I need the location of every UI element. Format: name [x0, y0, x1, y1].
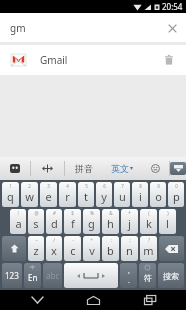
- staticText: @: [34, 210, 39, 216]
- button[interactable]: Move cursor: [31, 157, 64, 180]
- staticText: e: [45, 189, 52, 204]
- button[interactable]: (: [140, 209, 157, 234]
- button[interactable]: 英文: [103, 157, 141, 180]
- button[interactable]: Recent apps: [130, 290, 170, 310]
- button[interactable]: +: [83, 236, 100, 261]
- staticText: .: [128, 276, 130, 286]
- button[interactable]: &: [102, 209, 119, 234]
- staticText: u: [119, 189, 126, 204]
- staticText: ,: [128, 266, 130, 276]
- staticText: /: [53, 237, 55, 243]
- staticText: ;: [129, 237, 131, 243]
- button[interactable]: %: [83, 209, 100, 234]
- staticText: 2: [28, 183, 31, 189]
- staticText: 符: [144, 273, 152, 283]
- button[interactable]: ~: [28, 236, 44, 261]
- staticText: $: [71, 210, 74, 216]
- button[interactable]: ;: [121, 236, 138, 261]
- button[interactable]: :: [102, 236, 119, 261]
- staticText: 8: [139, 183, 142, 189]
- staticText: *: [128, 210, 131, 216]
- staticText: g: [88, 216, 95, 231]
- staticText: !: [17, 210, 19, 216]
- staticText: q: [7, 189, 14, 204]
- staticText: x: [51, 243, 57, 258]
- button[interactable]: Hide keyboard: [17, 290, 57, 310]
- staticText: +: [90, 237, 93, 243]
- button[interactable]: @: [28, 209, 44, 234]
- staticText: 123: [5, 270, 19, 281]
- button[interactable]: 符: [139, 263, 156, 288]
- button[interactable]: abc: [43, 263, 62, 288]
- button[interactable]: Emoji: [141, 157, 169, 180]
- button[interactable]: Backspace: [159, 236, 184, 261]
- button[interactable]: ?: [140, 236, 157, 261]
- button[interactable]: 拼音: [65, 157, 103, 180]
- button[interactable]: Hide keyboard: [170, 157, 186, 180]
- button[interactable]: 2: [21, 182, 38, 207]
- staticText: 英文: [111, 163, 129, 174]
- staticText: r: [65, 189, 70, 204]
- button[interactable]: Shift: [2, 236, 26, 261]
- button[interactable]: Gmail: [0, 45, 186, 75]
- staticText: 1: [9, 183, 12, 189]
- staticText: ): [167, 210, 169, 216]
- button[interactable]: Input method settings: [0, 157, 30, 180]
- staticText: %: [90, 210, 94, 216]
- button[interactable]: 1: [2, 182, 19, 207]
- button[interactable]: $: [64, 209, 81, 234]
- staticText: k: [146, 216, 152, 231]
- staticText: p: [173, 189, 180, 204]
- button[interactable]: #: [46, 209, 62, 234]
- button[interactable]: /: [46, 236, 62, 261]
- staticText: 搜索: [163, 271, 179, 281]
- staticText: 3: [47, 183, 50, 189]
- button[interactable]: Punctuation: [120, 263, 137, 288]
- staticText: 5: [85, 183, 88, 189]
- staticText: l: [166, 216, 169, 231]
- button[interactable]: 7: [114, 182, 130, 207]
- staticText: t: [84, 189, 88, 204]
- staticText: 中: [30, 264, 35, 270]
- button[interactable]: -: [64, 236, 81, 261]
- staticText: 拼音: [75, 163, 93, 174]
- staticText: 20:54: [162, 1, 183, 12]
- staticText: d: [51, 216, 58, 231]
- staticText: m: [143, 243, 154, 258]
- button[interactable]: Space: [64, 263, 118, 288]
- staticText: En: [28, 272, 38, 283]
- button[interactable]: !: [10, 209, 26, 234]
- staticText: :: [110, 237, 112, 243]
- button[interactable]: 0: [168, 182, 184, 207]
- button[interactable]: 9: [150, 182, 166, 207]
- staticText: c: [70, 243, 76, 258]
- staticText: n: [126, 243, 133, 258]
- staticText: #: [53, 210, 56, 216]
- staticText: f: [71, 216, 75, 231]
- button[interactable]: Remove suggestion: [160, 51, 178, 69]
- staticText: -: [72, 237, 74, 243]
- staticText: y: [101, 189, 107, 204]
- button[interactable]: 6: [96, 182, 112, 207]
- button[interactable]: 3: [40, 182, 57, 207]
- staticText: 0: [175, 183, 178, 189]
- button[interactable]: *: [121, 209, 138, 234]
- staticText: z: [33, 243, 39, 258]
- staticText: abc: [46, 270, 60, 281]
- staticText: b: [107, 243, 114, 258]
- button[interactable]: Home: [73, 290, 113, 310]
- button[interactable]: 中: [24, 263, 41, 288]
- button[interactable]: ): [159, 209, 176, 234]
- staticText: (: [148, 210, 150, 216]
- button[interactable]: 搜索: [158, 263, 184, 288]
- button[interactable]: 4: [59, 182, 76, 207]
- button[interactable]: 5: [78, 182, 94, 207]
- staticText: 9: [157, 183, 160, 189]
- staticText: s: [33, 216, 39, 231]
- staticText: w: [25, 189, 34, 204]
- staticText: j: [128, 216, 131, 231]
- button[interactable]: Clear query: [164, 20, 180, 36]
- button[interactable]: 8: [132, 182, 148, 207]
- button[interactable]: 123: [2, 263, 22, 288]
- button[interactable]: gm: [0, 13, 186, 42]
